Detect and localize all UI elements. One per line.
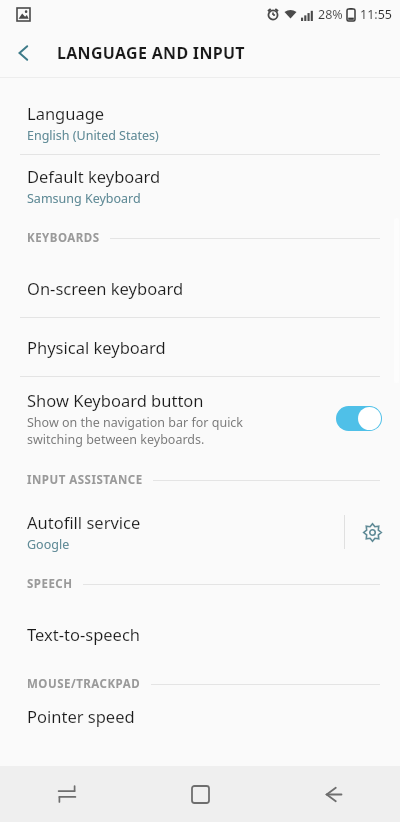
- staticText: Pointer speed: [27, 705, 135, 727]
- staticText: SPEECH: [27, 576, 73, 592]
- staticText: Physical keyboard: [27, 336, 166, 358]
- button[interactable]: Recent apps: [0, 766, 134, 822]
- staticText: Autofill service: [27, 511, 141, 533]
- staticText: MOUSE/TRACKPAD: [27, 676, 141, 692]
- button[interactable]: Language: [0, 92, 400, 154]
- staticText: KEYBOARDS: [27, 230, 100, 246]
- button[interactable]: Autofill settings: [345, 501, 400, 563]
- staticText: Show Keyboard button: [27, 389, 204, 411]
- staticText: LANGUAGE AND INPUT: [57, 42, 245, 64]
- staticText: Show on the navigation bar for quick swi…: [27, 414, 244, 447]
- other: Show Keyboard button toggle: [336, 406, 382, 431]
- button[interactable]: Autofill service: [0, 511, 344, 553]
- button[interactable]: Back: [0, 29, 48, 77]
- button[interactable]: On-screen keyboard: [0, 259, 400, 317]
- staticText: Default keyboard: [27, 165, 161, 187]
- button[interactable]: Show Keyboard button: [0, 377, 400, 459]
- button[interactable]: Default keyboard: [0, 155, 400, 217]
- button[interactable]: Home: [134, 766, 267, 822]
- staticText: On-screen keyboard: [27, 277, 184, 299]
- staticText: Samsung Keyboard: [27, 190, 141, 207]
- button[interactable]: Physical keyboard: [0, 318, 400, 376]
- staticText: INPUT ASSISTANCE: [27, 472, 143, 488]
- staticText: Language: [27, 102, 105, 124]
- staticText: English (United States): [27, 127, 159, 144]
- staticText: Google: [27, 536, 70, 553]
- button[interactable]: Text-to-speech: [0, 605, 400, 663]
- staticText: 28%: [318, 6, 343, 23]
- staticText: Text-to-speech: [27, 623, 141, 645]
- button[interactable]: Back: [267, 766, 400, 822]
- staticText: 11:55: [360, 6, 392, 23]
